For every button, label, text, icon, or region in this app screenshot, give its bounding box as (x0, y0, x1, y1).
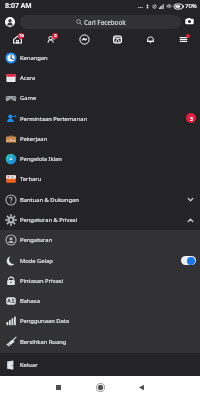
staticText: Pengaturan (20, 236, 52, 244)
staticText: Mode Gelap (20, 257, 53, 265)
button[interactable]: Pengaturan & Privasi (0, 210, 200, 230)
staticText: Permintaan Pertemanan (20, 115, 87, 123)
button[interactable]: Back (134, 380, 148, 394)
staticText: 3 (54, 33, 57, 39)
button[interactable]: Bersihkan Ruang (0, 331, 200, 353)
button[interactable]: Terbaru (0, 169, 200, 189)
staticText: Keluar (20, 361, 38, 369)
button[interactable]: Messenger (68, 31, 101, 47)
button[interactable]: Keluar (0, 353, 200, 376)
button[interactable]: Permintaan Pertemanan (0, 108, 200, 129)
staticText: Bahasa (20, 297, 40, 305)
staticText: Bantuan & Dukungan (20, 196, 79, 204)
button[interactable]: Menu (167, 31, 200, 47)
button[interactable]: Mode Gelap (0, 250, 200, 271)
staticText: 70% (185, 2, 197, 10)
staticText: Game (20, 94, 37, 102)
button[interactable]: Home (93, 380, 107, 394)
staticText: Pengelola Iklan (20, 155, 62, 163)
staticText: 10 (19, 33, 24, 39)
button[interactable]: Bantuan & Dukungan (0, 189, 200, 210)
staticText: Cari Facebook (84, 18, 126, 26)
staticText: ... (138, 2, 143, 10)
staticText: Terbaru (20, 175, 42, 183)
button[interactable]: Cari Facebook (20, 15, 181, 29)
button[interactable]: Pengelola Iklan (0, 149, 200, 169)
staticText: Pengaturan & Privasi (20, 216, 78, 224)
button[interactable]: Marketplace (101, 31, 134, 47)
button[interactable]: Penggunaan Data (0, 311, 200, 331)
staticText: 8:07 AM (5, 1, 32, 11)
staticText: Pintasan Privasi (20, 277, 63, 285)
staticText: Pekerjaan (20, 135, 48, 143)
staticText: Bersihkan Ruang (20, 338, 67, 346)
staticText: Acara (20, 74, 36, 82)
staticText: 3 (190, 115, 193, 122)
button[interactable]: Kenangan (0, 47, 200, 68)
button[interactable]: Bahasa (0, 291, 200, 311)
button[interactable]: Pintasan Privasi (0, 271, 200, 291)
button[interactable]: Game (0, 88, 200, 108)
button[interactable]: Acara (0, 68, 200, 88)
button[interactable]: Camera (184, 16, 195, 27)
button[interactable]: Home (0, 31, 34, 47)
button[interactable]: Pekerjaan (0, 129, 200, 149)
button[interactable]: Profile (5, 17, 15, 27)
button[interactable]: Pengaturan (0, 230, 200, 250)
button[interactable]: Friends (34, 31, 68, 47)
button[interactable]: Recents (51, 380, 65, 394)
button[interactable]: Notifications (134, 31, 167, 47)
staticText: Kenangan (20, 54, 48, 62)
staticText: Penggunaan Data (20, 317, 70, 325)
